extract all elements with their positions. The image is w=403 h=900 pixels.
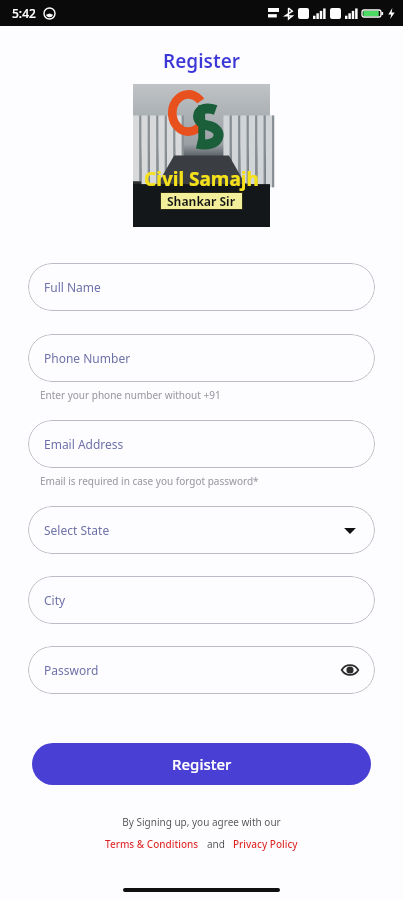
button[interactable]: Privacy Policy bbox=[233, 837, 298, 851]
staticText: Register bbox=[0, 48, 403, 74]
button[interactable]: Register bbox=[32, 743, 371, 785]
staticText: 5:42 bbox=[12, 5, 36, 21]
button[interactable]: City bbox=[28, 576, 375, 624]
staticText: Register bbox=[172, 754, 232, 774]
staticText: and bbox=[207, 837, 225, 851]
staticText: Enter your phone number without +91 bbox=[40, 388, 221, 402]
button[interactable]: Phone Number bbox=[28, 334, 375, 382]
staticText: Terms & Conditions bbox=[105, 837, 199, 851]
staticText: Civil Samajh bbox=[144, 166, 259, 192]
staticText: By Signing up, you agree with our bbox=[0, 815, 403, 829]
button[interactable]: Email Address bbox=[28, 420, 375, 468]
staticText: Email is required in case you forgot pas… bbox=[40, 474, 259, 488]
staticText: Phone Number bbox=[44, 350, 131, 366]
staticText: Privacy Policy bbox=[233, 837, 298, 851]
staticText: Select State bbox=[44, 522, 110, 538]
staticText: City bbox=[44, 592, 66, 608]
staticText: Full Name bbox=[44, 279, 101, 295]
button[interactable]: Select State bbox=[28, 506, 375, 554]
button[interactable]: Password bbox=[28, 646, 375, 694]
staticText: Shankar Sir bbox=[167, 193, 236, 209]
other: Show password bbox=[341, 661, 359, 679]
button[interactable]: Terms & Conditions bbox=[105, 837, 199, 851]
staticText: Password bbox=[44, 662, 99, 678]
button[interactable]: Full Name bbox=[28, 263, 375, 311]
staticText: Email Address bbox=[44, 436, 124, 452]
